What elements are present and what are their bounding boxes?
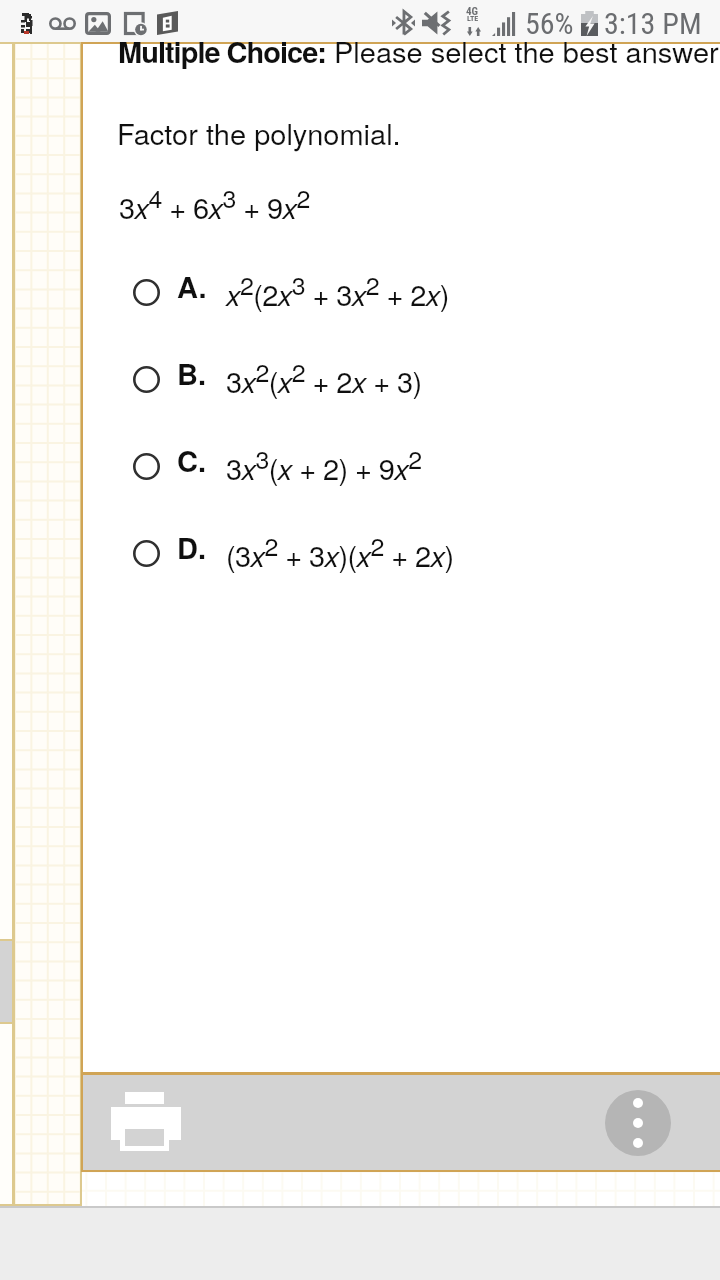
staticText: D. xyxy=(177,526,207,568)
staticText: 3:13 PM xyxy=(604,6,702,41)
staticText: Factor the polynomial. xyxy=(117,112,637,154)
button[interactable]: C. xyxy=(120,430,720,502)
button[interactable]: A. xyxy=(120,256,720,328)
staticText: C. xyxy=(177,439,207,481)
staticText: (3x2 + 3x)(x2 + 2x) xyxy=(226,527,720,575)
staticText: Multiple Choice: Please select the best … xyxy=(118,30,720,72)
staticText: 3x4 + 6x3 + 9x2 xyxy=(119,179,639,227)
button[interactable]: Print xyxy=(103,1085,187,1161)
staticText: 3x3(x + 2) + 9x2 xyxy=(226,440,720,488)
button[interactable]: More options xyxy=(605,1090,671,1156)
staticText: A. xyxy=(177,265,207,307)
staticText: 56% xyxy=(525,6,574,41)
staticText: LTE xyxy=(467,14,479,23)
staticText: 3x2(x2 + 2x + 3) xyxy=(226,353,720,401)
staticText: 4G xyxy=(466,5,478,18)
button[interactable]: D. xyxy=(120,517,720,589)
staticText: x2(2x3 + 3x2 + 2x) xyxy=(226,266,720,314)
staticText: B. xyxy=(177,352,207,394)
button[interactable]: B. xyxy=(120,343,720,415)
